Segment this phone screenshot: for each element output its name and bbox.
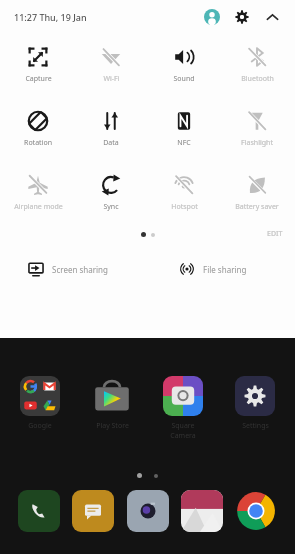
button[interactable]: Sync <box>76 172 146 214</box>
staticText: File sharing <box>203 264 247 275</box>
staticText: Flashlight <box>241 138 273 148</box>
button[interactable]: Camera <box>127 490 169 532</box>
staticText: Sync <box>103 202 119 212</box>
button[interactable]: Settings <box>224 376 286 431</box>
staticText: Wi-Fi <box>103 74 120 84</box>
button[interactable]: Wi-Fi <box>76 44 146 86</box>
button[interactable]: Airplane mode <box>3 172 73 214</box>
button[interactable]: Square Camera <box>152 376 214 441</box>
button[interactable]: Screen sharing <box>0 252 147 286</box>
button[interactable]: Hotspot <box>149 172 219 214</box>
button[interactable]: Bluetooth <box>222 44 292 86</box>
staticText: Hotspot <box>171 202 198 212</box>
button[interactable]: Messages <box>72 490 114 532</box>
staticText: Screen sharing <box>52 264 108 275</box>
staticText: Battery saver <box>235 202 279 212</box>
button[interactable]: Phone <box>18 490 60 532</box>
staticText: Rotation <box>24 138 52 148</box>
button[interactable]: Battery saver <box>222 172 292 214</box>
button[interactable]: EDIT <box>267 229 283 239</box>
button[interactable]: Play Store <box>81 376 143 431</box>
button[interactable]: NFC <box>149 108 219 150</box>
staticText: Square Camera <box>170 421 196 441</box>
button[interactable]: Sound <box>149 44 219 86</box>
button[interactable]: File sharing <box>147 252 295 286</box>
button[interactable]: Gallery <box>181 490 223 532</box>
staticText: Bluetooth <box>241 74 274 84</box>
button[interactable]: Chrome <box>235 490 277 532</box>
staticText: Settings <box>242 421 269 431</box>
staticText: Capture <box>25 74 52 84</box>
button[interactable]: Capture <box>3 44 73 86</box>
staticText: Google <box>28 421 52 431</box>
staticText: Airplane mode <box>14 202 63 212</box>
staticText: 11:27 Thu, 19 Jan <box>14 11 87 23</box>
staticText: Sound <box>173 74 195 84</box>
staticText: Data <box>103 138 119 148</box>
staticText: NFC <box>177 138 191 148</box>
button[interactable]: Google <box>9 376 71 431</box>
button[interactable]: Rotation <box>3 108 73 150</box>
staticText: Play Store <box>96 421 129 431</box>
button[interactable]: Collapse <box>259 4 285 30</box>
button[interactable]: Flashlight <box>222 108 292 150</box>
button[interactable]: User account <box>199 4 225 30</box>
button[interactable]: Data <box>76 108 146 150</box>
button[interactable]: Settings <box>229 4 255 30</box>
